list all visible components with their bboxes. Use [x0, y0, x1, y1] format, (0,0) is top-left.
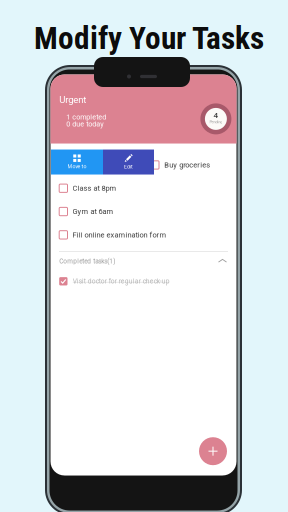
- staticText: Urgent: [59, 94, 86, 105]
- staticText: Class at 8pm: [72, 184, 116, 193]
- staticText: Edit: [124, 164, 133, 170]
- staticText: Pending: [209, 120, 222, 124]
- staticText: 0 due today: [66, 120, 103, 128]
- staticText: Gym at 6am: [72, 207, 113, 216]
- button[interactable]: Gym at 6am: [50, 200, 236, 223]
- staticText: Move to: [67, 163, 86, 170]
- staticText: Modify Your Tasks: [34, 20, 264, 57]
- button[interactable]: Add task: [199, 437, 227, 465]
- staticText: Visit doctor for regular check-up: [73, 277, 170, 285]
- button[interactable]: Move to: [51, 149, 103, 174]
- staticText: 4: [213, 111, 218, 120]
- button[interactable]: Edit: [103, 149, 154, 174]
- staticText: Buy groceries: [164, 161, 210, 169]
- button[interactable]: Completed tasks(1): [50, 252, 236, 271]
- button[interactable]: Buy groceries: [50, 153, 236, 177]
- staticText: Fill online examination form: [72, 230, 166, 239]
- staticText: 1 completed: [66, 113, 106, 121]
- button[interactable]: Fill online examination form: [50, 223, 236, 246]
- button[interactable]: Class at 8pm: [50, 177, 236, 200]
- button[interactable]: Visit doctor for regular check-up: [50, 271, 236, 292]
- staticText: Completed tasks(1): [59, 258, 115, 265]
